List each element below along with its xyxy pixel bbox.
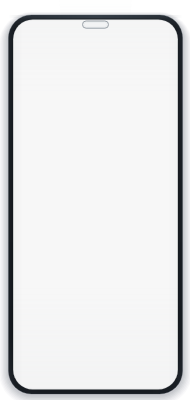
other: Smartphone front view with tempered glas… xyxy=(0,0,190,400)
